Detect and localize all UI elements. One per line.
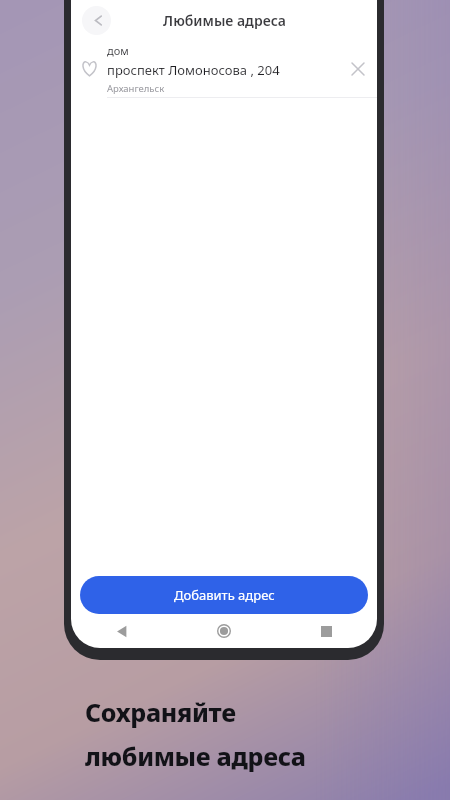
- button[interactable]: дом: [71, 40, 377, 97]
- staticText: Архангельск: [107, 82, 165, 95]
- staticText: дом: [107, 43, 129, 58]
- staticText: проспект Ломоносова , 204: [107, 61, 280, 79]
- button[interactable]: Добавить адрес: [80, 576, 368, 614]
- button[interactable]: Удалить адрес: [339, 40, 377, 97]
- staticText: Любимые адреса: [163, 11, 286, 30]
- button[interactable]: Назад: [71, 614, 173, 648]
- staticText: Добавить адрес: [174, 586, 275, 604]
- button[interactable]: Обзор: [275, 614, 377, 648]
- staticText: любимые адреса: [85, 739, 306, 773]
- button[interactable]: Назад: [82, 6, 111, 35]
- button[interactable]: Домой: [173, 614, 275, 648]
- staticText: Сохраняйте: [85, 695, 236, 729]
